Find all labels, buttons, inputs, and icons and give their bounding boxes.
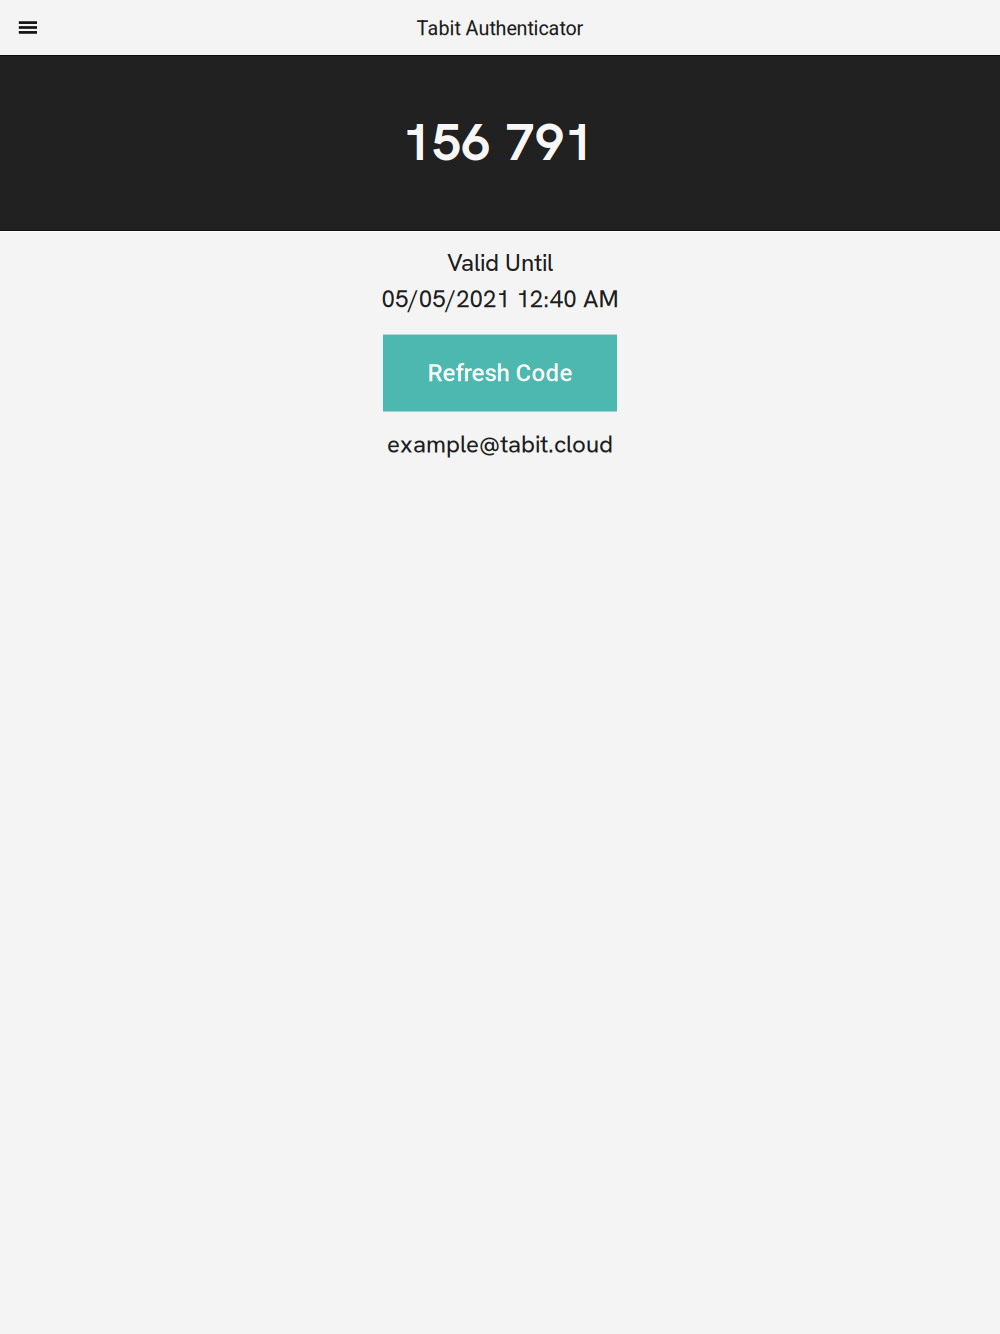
staticText: Valid Until: [447, 247, 553, 278]
button[interactable]: Refresh Code: [383, 334, 617, 411]
button[interactable]: Menu: [9, 5, 46, 49]
staticText: Tabit Authenticator: [416, 17, 583, 40]
staticText: 156 791: [402, 108, 593, 176]
staticText: Refresh Code: [427, 359, 572, 387]
staticText: example@tabit.cloud: [387, 428, 613, 460]
staticText: 05/05/2021 12:40 AM: [381, 283, 618, 315]
